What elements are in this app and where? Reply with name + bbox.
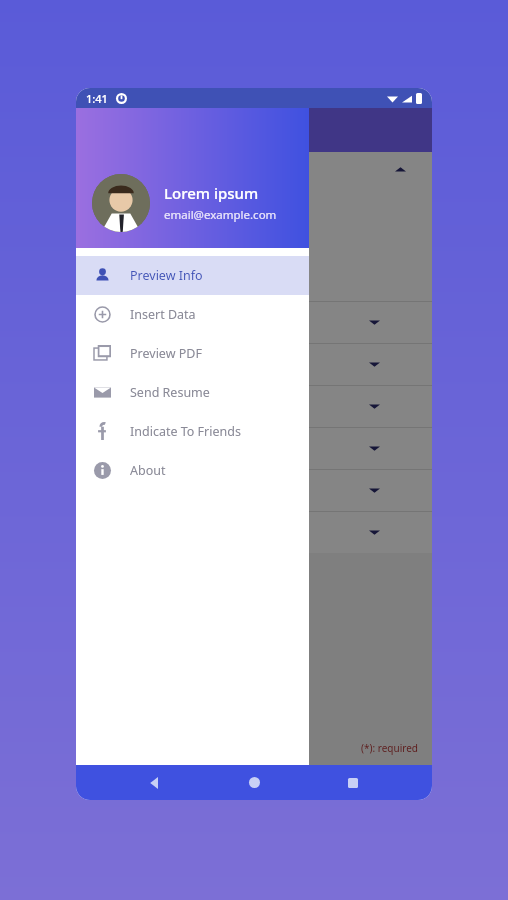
button[interactable]: Preview PDF [76, 334, 309, 373]
staticText: Insert Data [130, 306, 196, 323]
button[interactable]: Indicate To Friends [76, 412, 309, 451]
button[interactable] [76, 343, 432, 385]
staticText: 1:41 [86, 91, 108, 106]
staticText: 123456789 [92, 246, 154, 262]
button[interactable] [76, 469, 432, 511]
staticText: Lorem ipsum [164, 183, 259, 203]
button[interactable] [76, 511, 432, 553]
staticText: Lorem ipsum [92, 221, 167, 237]
staticText: Preview PDF [130, 345, 202, 362]
button[interactable] [76, 427, 432, 469]
button[interactable]: Recent apps [333, 765, 373, 800]
button[interactable]: Back [135, 765, 175, 800]
button[interactable]: About [76, 451, 309, 490]
staticText: About [130, 462, 166, 479]
button[interactable]: Lorem ipsum [76, 108, 309, 248]
staticText: Male, Single, 23 years [92, 196, 214, 212]
button[interactable]: Insert Data [76, 295, 309, 334]
staticText: email@example.com [164, 207, 277, 223]
staticText: email@example.com [92, 271, 210, 287]
button[interactable]: Home [234, 765, 274, 800]
button[interactable] [76, 301, 432, 343]
button[interactable]: Send Resume [76, 373, 309, 412]
staticText: Preview Info [130, 267, 203, 284]
button[interactable]: Preview Info [76, 256, 309, 295]
staticText: Send Resume [130, 384, 210, 401]
staticText: (*): required [361, 741, 418, 755]
staticText: Indicate To Friends [130, 423, 241, 440]
button[interactable] [76, 385, 432, 427]
